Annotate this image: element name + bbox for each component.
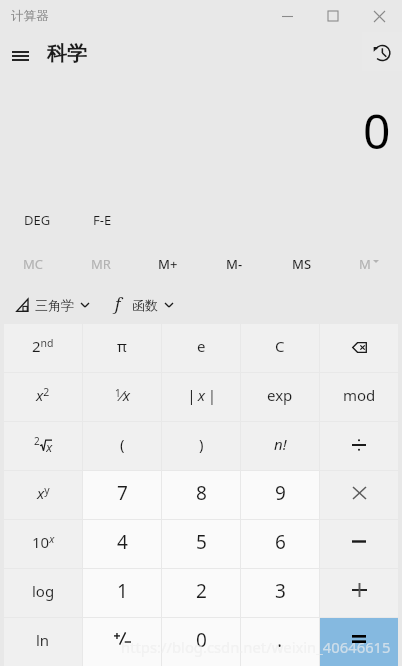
button[interactable]: Backspace (320, 324, 398, 372)
button[interactable]: MC (0, 253, 67, 287)
staticText: MS (292, 255, 312, 273)
button[interactable]: π (83, 324, 161, 372)
staticText: MC (23, 255, 44, 273)
button[interactable]: DEG (16, 206, 59, 234)
staticText: https://blog.csdn.net/weixin_40646615 (121, 637, 391, 657)
button[interactable]: ln (4, 618, 82, 666)
button[interactable]: 三角学 (12, 292, 93, 318)
staticText: 2nd (32, 336, 54, 357)
button[interactable]: 6 (241, 520, 319, 568)
staticText: 1⁄x (115, 385, 130, 405)
button[interactable]: f (103, 288, 177, 321)
staticText: log (32, 581, 55, 601)
button[interactable]: 2 (162, 569, 240, 617)
staticText: ( (120, 434, 125, 454)
button[interactable]: Divide (320, 422, 398, 470)
staticText: | x | (187, 385, 216, 405)
staticText: 8 (196, 480, 207, 506)
button[interactable]: 5 (162, 520, 240, 568)
button[interactable]: e (162, 324, 240, 372)
button[interactable]: . (241, 618, 319, 666)
staticText: exp (267, 385, 293, 405)
button[interactable]: 1 (83, 569, 161, 617)
button[interactable]: M- (201, 253, 268, 287)
button[interactable]: M+ (134, 253, 201, 287)
other: Plus minus (114, 632, 131, 645)
staticText: 3 (275, 578, 286, 604)
staticText: 9 (275, 480, 286, 506)
button[interactable]: Equals (320, 618, 398, 666)
button[interactable]: 10x (4, 520, 82, 568)
button[interactable]: mod (320, 373, 398, 421)
button[interactable]: x (4, 422, 82, 470)
staticText: 计算器 (11, 8, 49, 24)
button[interactable]: 1⁄x (83, 373, 161, 421)
staticText: 2 (196, 578, 207, 604)
staticText: 10x (32, 532, 55, 553)
other: Equals (352, 635, 366, 643)
button[interactable]: Multiply (320, 471, 398, 519)
staticText: ) (199, 434, 204, 454)
button[interactable]: 4 (83, 520, 161, 568)
staticText: 5 (196, 529, 207, 555)
button[interactable]: x2 (4, 373, 82, 421)
button[interactable]: Subtract (320, 520, 398, 568)
button[interactable]: Minimize (264, 0, 310, 32)
staticText: n! (274, 434, 287, 454)
staticText: M- (226, 255, 243, 273)
staticText: 科学 (47, 41, 87, 66)
staticText: 0 (363, 98, 391, 163)
other: Subtract (352, 540, 366, 543)
button[interactable]: MR (67, 253, 134, 287)
staticText: 1 (117, 578, 128, 604)
staticText: 7 (117, 480, 128, 506)
other: Multiply (353, 487, 366, 499)
button[interactable]: ) (162, 422, 240, 470)
button[interactable]: C (241, 324, 319, 372)
button[interactable]: 2nd (4, 324, 82, 372)
button[interactable]: | x | (162, 373, 240, 421)
button[interactable]: ( (83, 422, 161, 470)
staticText: 4 (117, 529, 128, 555)
button[interactable]: xy (4, 471, 82, 519)
staticText: 2 (34, 434, 40, 448)
button[interactable]: History (364, 35, 400, 71)
button[interactable]: Close (356, 0, 402, 32)
staticText: mod (343, 385, 376, 405)
other: Add (352, 583, 367, 597)
button[interactable]: log (4, 569, 82, 617)
staticText: C (275, 336, 285, 356)
staticText: f (115, 292, 121, 315)
staticText: 函数 (132, 297, 158, 313)
staticText: DEG (24, 211, 51, 229)
staticText: 三角学 (35, 297, 74, 313)
staticText: 6 (275, 529, 286, 555)
button[interactable]: M (335, 253, 402, 287)
button[interactable]: 8 (162, 471, 240, 519)
staticText: e (197, 336, 206, 356)
staticText: . (277, 627, 283, 653)
button[interactable]: 9 (241, 471, 319, 519)
button[interactable]: 7 (83, 471, 161, 519)
button[interactable]: 3 (241, 569, 319, 617)
staticText: 0 (196, 627, 207, 653)
button[interactable]: MS (268, 253, 335, 287)
staticText: F-E (93, 211, 112, 229)
staticText: x2 (36, 385, 50, 406)
button[interactable]: exp (241, 373, 319, 421)
button[interactable]: 0 (162, 618, 240, 666)
button[interactable]: Maximize (310, 0, 356, 32)
other: Backspace (352, 342, 367, 353)
staticText: M+ (158, 255, 178, 273)
button[interactable]: n! (241, 422, 319, 470)
staticText: ln (36, 630, 50, 650)
staticText: x (46, 438, 53, 452)
button[interactable]: F-E (85, 206, 120, 234)
staticText: MR (91, 255, 111, 273)
staticText: M (359, 255, 371, 273)
button[interactable]: Plus minus (83, 618, 161, 666)
button[interactable]: Add (320, 569, 398, 617)
staticText: π (117, 336, 127, 356)
staticText: xy (37, 483, 50, 504)
button[interactable]: Menu (4, 40, 36, 72)
